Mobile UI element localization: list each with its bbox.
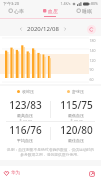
staticText: 心率 — [14, 8, 24, 14]
button[interactable]: 收缩压 — [0, 89, 50, 94]
staticText: 120/80 — [60, 123, 93, 137]
button[interactable]: Next day — [61, 25, 69, 33]
button[interactable]: 心率 — [0, 7, 33, 18]
staticText: 12:02 — [23, 119, 32, 121]
staticText: 116/76 — [9, 123, 42, 137]
button[interactable]: Share — [87, 169, 96, 178]
button[interactable]: Refresh — [87, 25, 96, 34]
button[interactable]: 115/75 — [51, 98, 101, 121]
staticText: 60 — [89, 77, 94, 82]
staticText: 115/75 — [60, 98, 93, 112]
staticText: 最高血压 — [17, 113, 33, 118]
button[interactable]: 华为 — [4, 166, 20, 180]
staticText: 平均血压 — [17, 138, 33, 143]
staticText: 收缩压 — [22, 89, 34, 94]
staticText: 90 — [89, 67, 94, 72]
staticText: 123/83 — [9, 98, 42, 112]
staticText: 140 — [89, 48, 96, 53]
button[interactable]: 116/76 — [0, 122, 50, 144]
staticText: 睡眠 — [82, 8, 92, 14]
button[interactable]: 123/83 — [0, 98, 50, 121]
staticText: 华为 — [11, 170, 20, 176]
staticText: 血压 — [48, 8, 58, 14]
staticText: 80% — [91, 1, 98, 6]
staticText: 最低血压 — [68, 113, 84, 118]
staticText: 舒张压 — [72, 89, 84, 94]
button[interactable]: Previous day — [17, 25, 25, 33]
staticText: 说明：血压测量不是绝对准确的数值，仅供运动时的参考数据之用，请勿提供医疗使用。 — [5, 147, 96, 157]
staticText: 120 — [89, 58, 96, 63]
staticText: 180 — [89, 38, 96, 43]
staticText: 1.4K/s — [60, 1, 71, 6]
staticText: 下午3:20 — [3, 1, 19, 6]
button[interactable]: 睡眠 — [67, 7, 101, 18]
button[interactable]: 血压 — [33, 7, 67, 18]
staticText: 最佳血压 — [68, 138, 84, 143]
button[interactable]: 2020/12/08 — [27, 25, 59, 33]
staticText: 08:15 — [74, 119, 83, 121]
button[interactable]: 舒张压 — [50, 89, 101, 94]
button[interactable]: 120/80 — [51, 122, 101, 144]
